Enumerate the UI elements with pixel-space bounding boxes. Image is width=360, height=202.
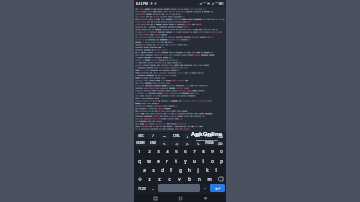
staticText: 2 (148, 149, 151, 155)
button[interactable]: b (185, 175, 194, 183)
button[interactable] (134, 7, 226, 132)
button[interactable]: ESC (135, 133, 146, 139)
staticText: HOME (136, 141, 145, 145)
button[interactable]: z (145, 175, 154, 183)
staticText: c (168, 176, 171, 182)
button[interactable]: Enter (210, 184, 225, 192)
staticText: 6 (184, 149, 187, 155)
staticText: a (143, 167, 146, 173)
button[interactable]: 4 (163, 148, 171, 156)
button[interactable]: END (147, 140, 158, 146)
button[interactable]: w (145, 157, 153, 165)
button[interactable]: 7 (190, 148, 198, 156)
button[interactable]: ↖ (159, 140, 170, 146)
button[interactable]: 2 (145, 148, 153, 156)
staticText: h (188, 167, 191, 173)
button[interactable]: a (140, 166, 148, 174)
button[interactable]: i (199, 157, 207, 165)
button[interactable]: Home (176, 194, 184, 202)
staticText: r (166, 158, 168, 164)
staticText: k (206, 167, 209, 173)
button[interactable]: u (190, 157, 198, 165)
button[interactable]: l (212, 166, 220, 174)
button[interactable]: CTRL (171, 133, 181, 139)
button[interactable]: v (175, 175, 184, 183)
button[interactable]: n (195, 175, 204, 183)
button[interactable]: m (205, 175, 214, 183)
staticText: 5 (175, 149, 178, 155)
button[interactable]: ▷ (182, 140, 192, 146)
button[interactable]: g (176, 166, 184, 174)
staticText: 0 (220, 149, 223, 155)
staticText: n (198, 176, 201, 182)
button[interactable]: HOME (135, 140, 146, 146)
staticText: CTRL (173, 134, 180, 138)
button[interactable]: PGDN (204, 140, 214, 146)
staticText: x (158, 176, 161, 182)
button[interactable]: t (172, 157, 180, 165)
staticText: v (178, 176, 181, 182)
button[interactable]: Backspace (215, 175, 225, 183)
staticText: u (193, 158, 196, 164)
staticText: — (163, 134, 166, 138)
button[interactable]: ⌫ (215, 133, 225, 139)
button[interactable]: ↓ (182, 133, 192, 139)
staticText: l (215, 167, 217, 173)
button[interactable]: 9 (208, 148, 216, 156)
button[interactable]: ⌦ (215, 140, 225, 146)
staticText: p (220, 158, 223, 164)
button[interactable]: 6 (181, 148, 189, 156)
button[interactable]: p (217, 157, 225, 165)
button[interactable]: 8 (199, 148, 207, 156)
button[interactable]: ◁ (171, 140, 181, 146)
button[interactable]: Recent apps (151, 194, 159, 202)
button[interactable]: q (135, 157, 144, 165)
button[interactable]: y (181, 157, 189, 165)
button[interactable]: x (155, 175, 164, 183)
staticText: ↖ (163, 142, 166, 145)
button[interactable]: k (203, 166, 211, 174)
staticText: 8:13 PM (136, 2, 149, 6)
staticText: d (161, 167, 164, 173)
button[interactable]: f (167, 166, 175, 174)
staticText: f (170, 167, 172, 173)
button[interactable]: . (201, 184, 209, 192)
staticText: e (157, 158, 160, 164)
button[interactable]: d (158, 166, 166, 174)
staticText: 7 (193, 149, 196, 155)
button[interactable]: ↳ (193, 140, 203, 146)
button[interactable]: — (159, 133, 170, 139)
button[interactable]: 3 (154, 148, 162, 156)
button[interactable]: Back (201, 194, 209, 202)
button[interactable]: o (208, 157, 216, 165)
button[interactable]: 5 (172, 148, 180, 156)
staticText: b (188, 176, 191, 182)
staticText: ⌫ (218, 135, 223, 138)
staticText: i (202, 158, 204, 164)
staticText: ?123 (138, 186, 146, 191)
button[interactable]: 1 (135, 148, 144, 156)
button[interactable]: 0 (217, 148, 225, 156)
staticText: z (148, 176, 151, 182)
staticText: w (147, 158, 151, 164)
staticText: t (175, 158, 177, 164)
staticText: y (184, 158, 187, 164)
button[interactable]: j (194, 166, 202, 174)
button[interactable]: h (185, 166, 193, 174)
button[interactable]: Space (158, 184, 200, 192)
button[interactable]: e (154, 157, 162, 165)
staticText: ↓ (186, 135, 189, 138)
button[interactable]: , (149, 184, 157, 192)
staticText: 4 (166, 149, 169, 155)
button[interactable]: / (147, 133, 158, 139)
button[interactable]: r (163, 157, 171, 165)
button[interactable]: s (149, 166, 157, 174)
button[interactable]: c (165, 175, 174, 183)
button[interactable]: PGUP (204, 133, 214, 139)
staticText: END (150, 141, 156, 145)
button[interactable]: ?123 (135, 184, 148, 192)
staticText: g (179, 167, 182, 173)
staticText: ESC (138, 134, 144, 138)
button[interactable]: Shift (135, 175, 144, 183)
button[interactable]: ALT (193, 133, 203, 139)
